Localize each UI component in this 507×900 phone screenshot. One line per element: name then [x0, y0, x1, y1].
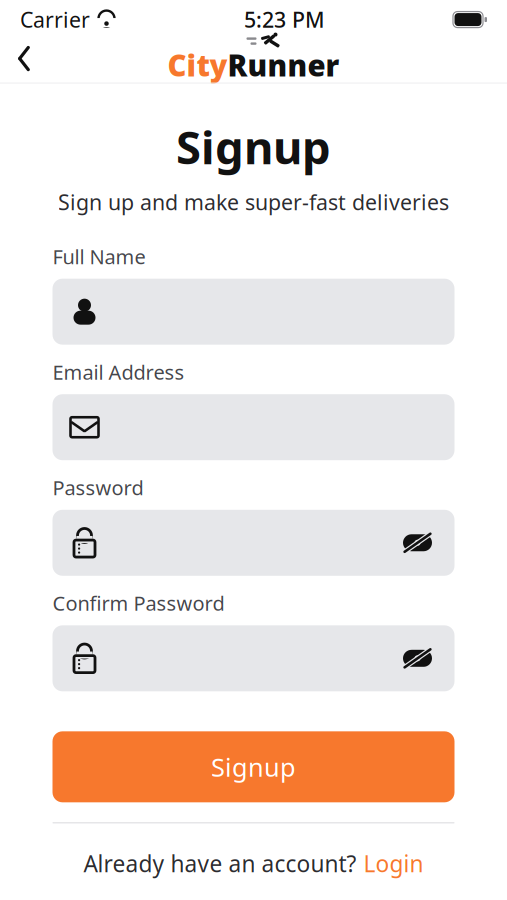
- staticText: Signup: [211, 750, 296, 784]
- button[interactable]: Password: [52, 510, 454, 576]
- button[interactable]: Already have an account?: [69, 840, 437, 886]
- staticText: Sign up and make super-fast deliveries: [58, 188, 449, 216]
- staticText: Email Address: [52, 359, 184, 385]
- staticText: Runner: [227, 46, 339, 85]
- staticText: Already have an account?: [83, 848, 356, 878]
- staticText: Confirm Password: [52, 590, 224, 616]
- staticText: 5:23 PM: [244, 5, 325, 34]
- button[interactable]: Full Name: [52, 279, 454, 345]
- staticText: Login: [363, 848, 423, 878]
- button[interactable]: Confirm Password: [52, 625, 454, 691]
- button[interactable]: Back: [2, 37, 46, 81]
- staticText: Full Name: [52, 243, 145, 270]
- staticText: Password: [52, 474, 143, 501]
- staticText: Signup: [176, 117, 331, 177]
- staticText: City: [167, 46, 227, 85]
- button[interactable]: Signup: [52, 731, 454, 802]
- button[interactable]: Email Address: [52, 394, 454, 460]
- staticText: Carrier: [20, 5, 90, 34]
